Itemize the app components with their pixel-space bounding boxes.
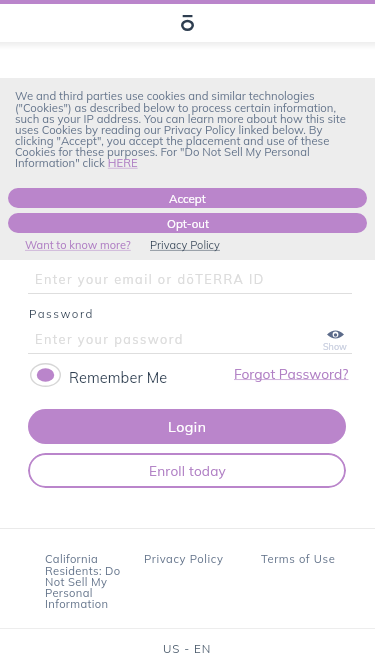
staticText: Accept <box>169 191 206 205</box>
staticText: Opt-out <box>167 216 209 230</box>
staticText: Login <box>168 418 207 436</box>
staticText: Enter your email or dōTERRA ID <box>35 271 265 287</box>
button[interactable]: Privacy Policy <box>144 552 224 566</box>
button[interactable]: Accept <box>8 188 367 208</box>
button[interactable]: Opt-out <box>8 213 367 233</box>
button[interactable]: Enroll today <box>28 453 346 488</box>
staticText: Remember Me <box>69 368 168 386</box>
button[interactable]: US - EN <box>0 629 375 667</box>
button[interactable]: Terms of Use <box>261 552 336 566</box>
staticText: Enter your password <box>35 331 184 347</box>
button[interactable]: Login <box>28 409 346 444</box>
button[interactable]: Want to know more? <box>25 238 131 252</box>
button[interactable]: Forgot Password? <box>234 365 349 382</box>
other: doTERRA <box>181 15 194 31</box>
staticText: Password <box>29 306 94 320</box>
staticText: Show <box>323 341 347 352</box>
button[interactable]: Remember Me <box>28 363 166 387</box>
staticText: US - EN <box>163 641 212 655</box>
button[interactable]: Privacy Policy <box>150 238 220 252</box>
staticText: Enroll today <box>149 462 226 479</box>
staticText: We and third parties use cookies and sim… <box>15 89 351 170</box>
button[interactable]: Show password <box>323 328 347 352</box>
button[interactable]: California Residents: Do Not Sell My Per… <box>45 552 123 611</box>
